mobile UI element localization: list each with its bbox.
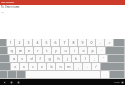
button[interactable]: Recent apps [16, 79, 21, 85]
staticText: 6 [54, 40, 57, 45]
button[interactable]: r [34, 47, 42, 54]
button[interactable]: 0 [87, 39, 95, 46]
button[interactable]: 6 [51, 39, 59, 46]
staticText: j [67, 56, 68, 61]
staticText: h [57, 56, 60, 61]
staticText: i [74, 48, 75, 53]
button[interactable]: · [97, 47, 105, 54]
staticText: q [10, 48, 13, 53]
button[interactable]: 5 [42, 39, 50, 46]
button[interactable]: l [81, 55, 89, 62]
button[interactable]: g [45, 55, 53, 62]
button[interactable]: 2 [15, 39, 23, 46]
staticText: = [108, 40, 111, 45]
button[interactable]: y [52, 47, 60, 54]
staticText: , [78, 64, 79, 69]
staticText: / [95, 64, 97, 69]
staticText: b [50, 64, 53, 69]
button[interactable]: u [61, 47, 69, 54]
button[interactable]: s [18, 55, 26, 62]
staticText: 5 [45, 40, 48, 45]
button[interactable]: 8 [69, 39, 77, 46]
button[interactable]: k [72, 55, 80, 62]
staticText: k [75, 56, 77, 61]
staticText: 2 [18, 40, 21, 45]
button[interactable]: q [8, 47, 15, 54]
staticText: 7 [63, 40, 66, 45]
button[interactable]: - [96, 39, 104, 46]
staticText: To Enter name [1, 5, 20, 9]
button[interactable]: z [11, 63, 19, 70]
staticText: l [85, 56, 86, 61]
button[interactable]: New message [0, 0, 125, 5]
staticText: 3 [27, 40, 30, 45]
button[interactable]: o [79, 47, 87, 54]
staticText: 1 [9, 40, 12, 45]
staticText: c [32, 64, 34, 69]
button[interactable]: j [63, 55, 71, 62]
staticText: r [37, 48, 39, 53]
button[interactable]: d [27, 55, 35, 62]
button[interactable]: w [16, 47, 24, 54]
button[interactable]: 3 [24, 39, 32, 46]
button[interactable]: c [29, 63, 37, 70]
staticText: · [101, 48, 102, 53]
button[interactable]: ; [90, 55, 98, 62]
button[interactable]: To Enter name [1, 5, 125, 9]
button[interactable]: / [92, 63, 100, 70]
staticText: w [19, 48, 22, 53]
staticText: - [99, 40, 101, 45]
button[interactable]: p [88, 47, 96, 54]
staticText: z [14, 64, 16, 69]
button[interactable]: i [70, 47, 78, 54]
button[interactable]: Back [2, 79, 7, 85]
staticText: . [87, 64, 88, 69]
button[interactable]: 1 [7, 39, 14, 46]
staticText: New message [1, 1, 15, 4]
staticText: o [82, 48, 85, 53]
button[interactable]: 9 [78, 39, 86, 46]
button[interactable]: Home [9, 79, 14, 85]
button[interactable]: v [38, 63, 46, 70]
button[interactable]: 4 [33, 39, 41, 46]
button[interactable]: 7 [60, 39, 68, 46]
staticText: y [55, 48, 57, 53]
button[interactable]: b [47, 63, 55, 70]
staticText: v [41, 64, 43, 69]
staticText: Aa [1, 10, 4, 13]
staticText: e [28, 48, 30, 53]
button[interactable]: . [83, 63, 91, 70]
button[interactable]: t [43, 47, 51, 54]
button[interactable]: m [65, 63, 73, 70]
button[interactable]: = [105, 39, 113, 46]
button[interactable]: , [74, 63, 82, 70]
staticText: ; [94, 56, 95, 61]
button[interactable]: n [56, 63, 64, 70]
staticText: ' [103, 56, 104, 61]
staticText: u [64, 48, 67, 53]
button[interactable]: a [10, 55, 17, 62]
button[interactable]: x [20, 63, 28, 70]
button[interactable]: h [54, 55, 62, 62]
staticText: 9 [81, 40, 84, 45]
staticText: 8 [72, 40, 75, 45]
staticText: n [59, 64, 62, 69]
button[interactable]: f [36, 55, 44, 62]
staticText: m [67, 64, 71, 69]
button[interactable]: e [25, 47, 33, 54]
button[interactable]: ' [99, 55, 107, 62]
